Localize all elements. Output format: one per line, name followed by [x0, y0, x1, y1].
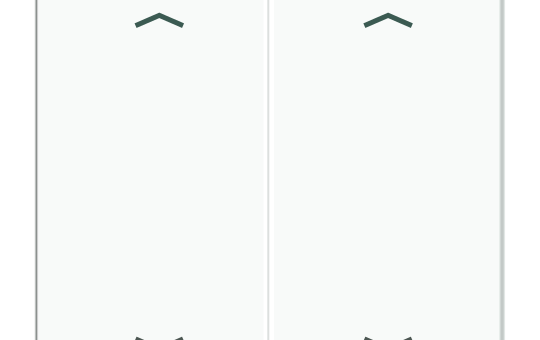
button[interactable]: Scroll up — [350, 0, 426, 42]
button[interactable]: Scroll down — [350, 322, 426, 340]
button[interactable]: Scroll up — [121, 0, 197, 42]
button[interactable]: Scroll down — [121, 322, 197, 340]
